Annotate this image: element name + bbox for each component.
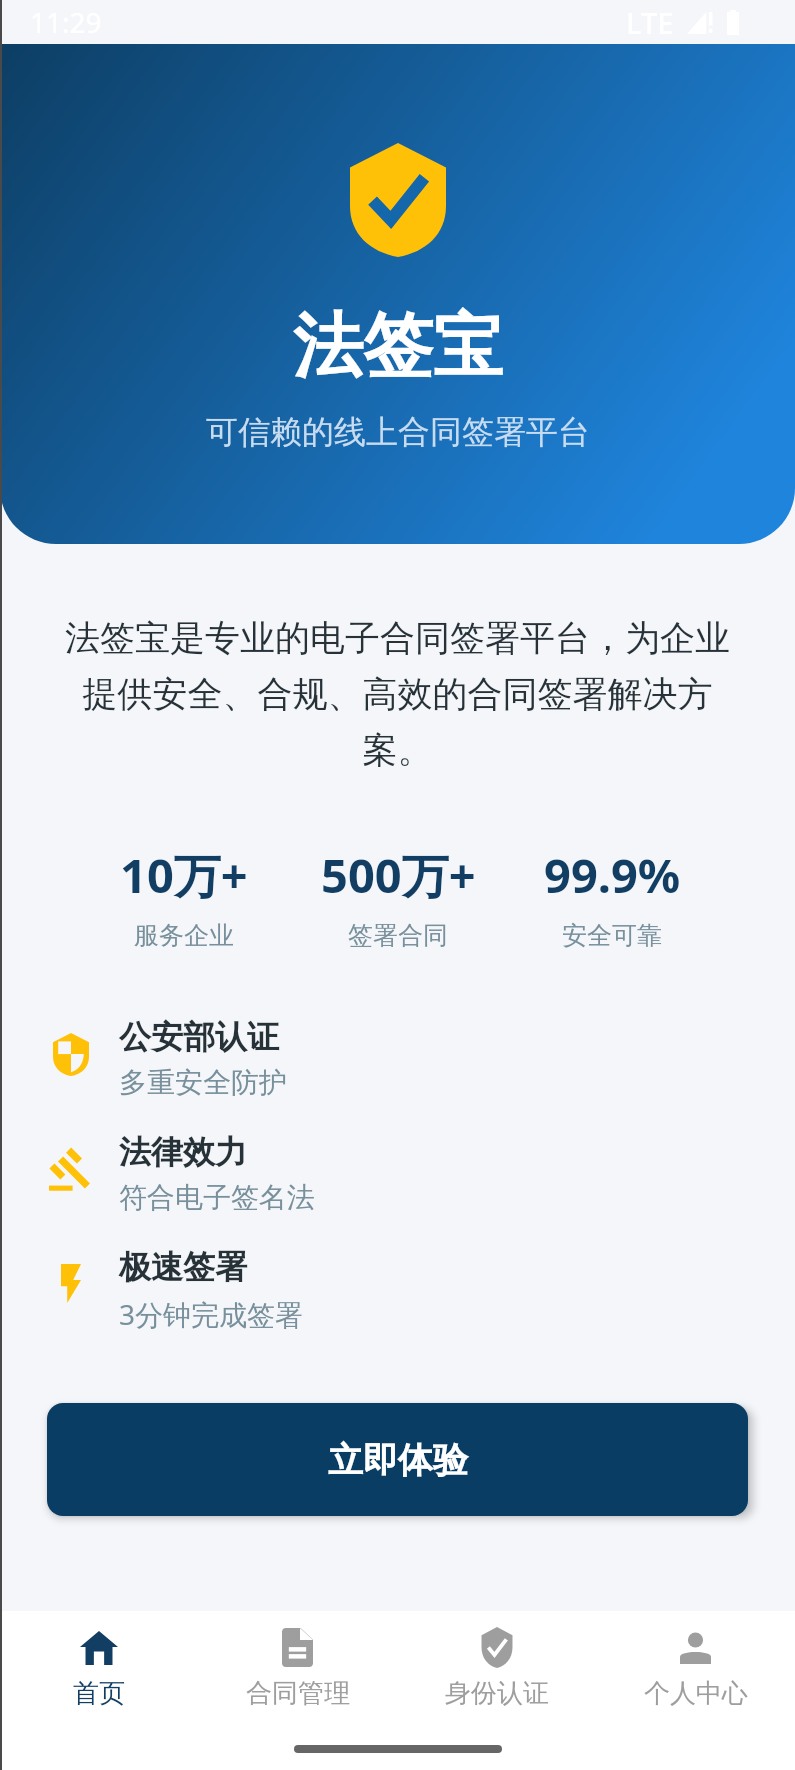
staticText: 立即体验 — [328, 1438, 468, 1482]
staticText: 法签宝是专业的电子合同签署平台，为企业提供安全、合规、高效的合同签署解决方案。 — [52, 616, 743, 772]
button[interactable]: 法律效力 — [0, 1132, 795, 1237]
button[interactable]: 立即体验 — [47, 1403, 748, 1516]
button[interactable]: 个人中心 — [596, 1611, 795, 1721]
staticText: 极速签署 — [119, 1247, 247, 1287]
staticText: 可信赖的线上合同签署平台 — [206, 412, 590, 452]
staticText: 签署合同 — [348, 920, 448, 951]
staticText: 安全可靠 — [562, 920, 662, 951]
staticText: 法签宝 — [293, 303, 503, 391]
staticText: 法律效力 — [119, 1132, 247, 1172]
staticText: 个人中心 — [644, 1677, 748, 1710]
staticText: 11:29 — [30, 3, 102, 41]
staticText: 公安部认证 — [119, 1017, 279, 1057]
button[interactable]: 极速签署 — [0, 1247, 795, 1352]
staticText: 99.9% — [544, 843, 681, 907]
staticText: LTE — [626, 3, 674, 42]
button[interactable]: 合同管理 — [198, 1611, 397, 1721]
staticText: 500万+ — [321, 843, 476, 907]
staticText: 10万+ — [120, 843, 248, 907]
staticText: 身份认证 — [445, 1677, 549, 1710]
button[interactable]: 公安部认证 — [0, 1017, 795, 1122]
staticText: 符合电子签名法 — [119, 1180, 315, 1215]
staticText: 首页 — [73, 1677, 125, 1710]
button[interactable]: 首页 — [0, 1611, 198, 1721]
staticText: 服务企业 — [134, 920, 234, 951]
button[interactable]: 身份认证 — [397, 1611, 596, 1721]
staticText: 3分钟完成签署 — [119, 1295, 304, 1333]
staticText: 多重安全防护 — [119, 1065, 287, 1100]
staticText: 合同管理 — [246, 1677, 350, 1710]
